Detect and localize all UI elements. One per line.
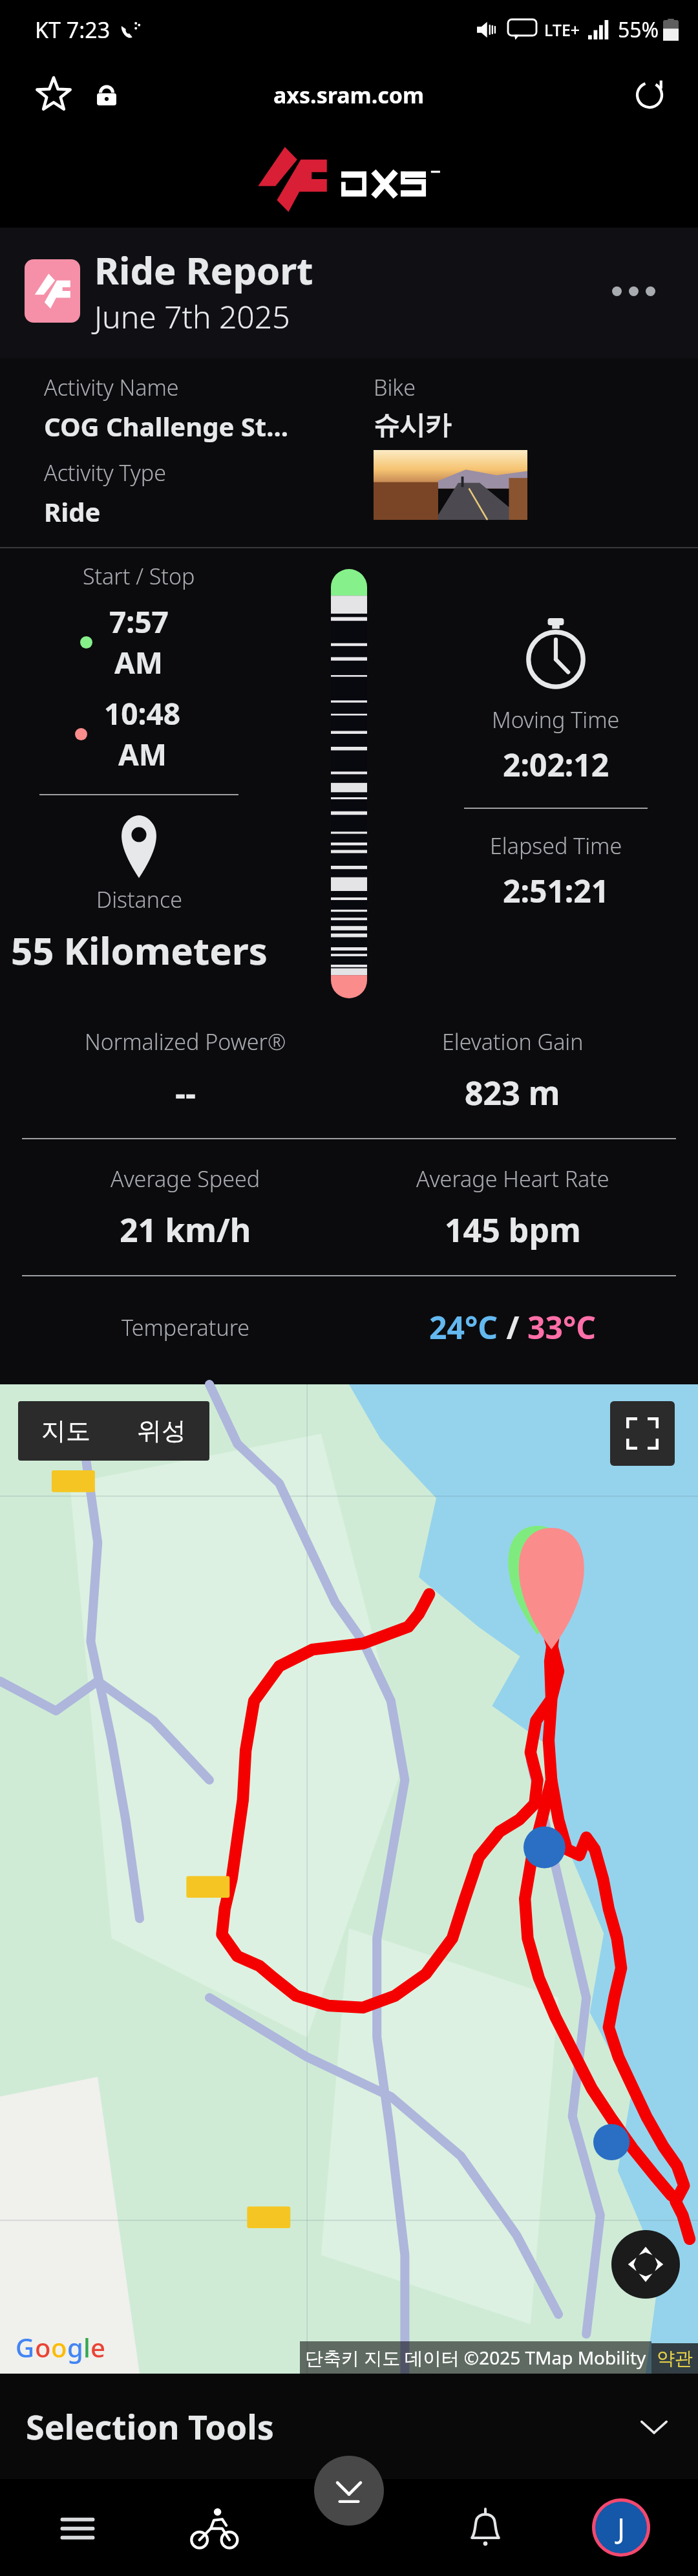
staticText: 33°C <box>527 1306 597 1348</box>
staticText: 위성 <box>137 1415 186 1446</box>
staticText: 10:48 <box>104 693 181 734</box>
button[interactable]: Collapse panel <box>314 2456 384 2526</box>
button[interactable]: 약관 <box>651 2343 698 2374</box>
staticText: 단축키 지도 데이터 ©2025 TMap Mobility <box>305 2345 646 2370</box>
button[interactable]: Reload <box>627 72 672 118</box>
staticText: AM <box>118 734 167 775</box>
staticText: Moving Time <box>492 705 620 735</box>
button[interactable]: Menu <box>9 2479 145 2576</box>
staticText: axs.sram.com <box>273 80 425 110</box>
staticText: g <box>67 2330 83 2365</box>
staticText: Distance <box>96 885 182 914</box>
button[interactable]: 위성 <box>114 1401 209 1461</box>
button[interactable]: axs.sram.com <box>258 74 440 116</box>
button[interactable]: Activities <box>145 2479 282 2576</box>
staticText: Average Heart Rate <box>416 1164 609 1194</box>
staticText: LTE+ <box>544 19 580 41</box>
staticText: Ride Report <box>94 244 313 295</box>
button[interactable]: More options <box>602 276 666 306</box>
staticText: KT 7:23 <box>35 15 111 45</box>
staticText: 지도 <box>41 1415 90 1446</box>
staticText: -- <box>175 1071 196 1115</box>
staticText: 약관 <box>657 2347 693 2370</box>
staticText: 55 Kilometers <box>11 925 268 976</box>
staticText: G <box>16 2330 35 2365</box>
staticText: Elevation Gain <box>442 1027 584 1057</box>
staticText: June 7th 2025 <box>94 295 290 338</box>
staticText: Start / Stop <box>83 561 195 591</box>
staticText: 145 bpm <box>445 1208 581 1252</box>
button[interactable]: Bookmark <box>31 72 76 118</box>
staticText: / <box>498 1306 527 1348</box>
staticText: Bike <box>374 372 416 402</box>
button[interactable]: Site information <box>88 76 125 114</box>
staticText: 24°C <box>429 1306 498 1348</box>
button[interactable]: Selection Tools <box>0 2374 698 2479</box>
staticText: l <box>83 2330 90 2365</box>
staticText: COG Challenge St... <box>44 409 288 444</box>
staticText: 2:51:21 <box>503 870 609 912</box>
button[interactable]: Profile <box>595 2502 647 2553</box>
staticText: Ride <box>44 494 101 529</box>
staticText: Average Speed <box>111 1164 260 1194</box>
staticText: Normalized Power® <box>85 1027 286 1057</box>
staticText: Activity Type <box>44 458 166 488</box>
staticText: Selection Tools <box>26 2403 274 2449</box>
staticText: 21 km/h <box>120 1208 251 1252</box>
staticText: 2:02:12 <box>503 744 609 786</box>
staticText: o <box>51 2330 67 2365</box>
staticText: J <box>617 2508 626 2547</box>
button[interactable]: Recenter map <box>611 2230 680 2299</box>
button[interactable]: 지도 <box>18 1401 114 1461</box>
staticText: e <box>90 2330 105 2365</box>
button[interactable]: Fullscreen map <box>610 1401 675 1466</box>
staticText: Temperature <box>122 1313 250 1342</box>
staticText: Activity Name <box>44 372 179 402</box>
staticText: 7:57 <box>109 601 169 642</box>
staticText: AM <box>114 642 164 683</box>
staticText: Elapsed Time <box>490 831 622 861</box>
staticText: 823 m <box>465 1071 560 1115</box>
staticText: o <box>35 2330 51 2365</box>
button[interactable]: Notifications <box>418 2479 553 2576</box>
staticText: 55% <box>618 16 659 44</box>
staticText: 슈시카 <box>374 409 451 441</box>
